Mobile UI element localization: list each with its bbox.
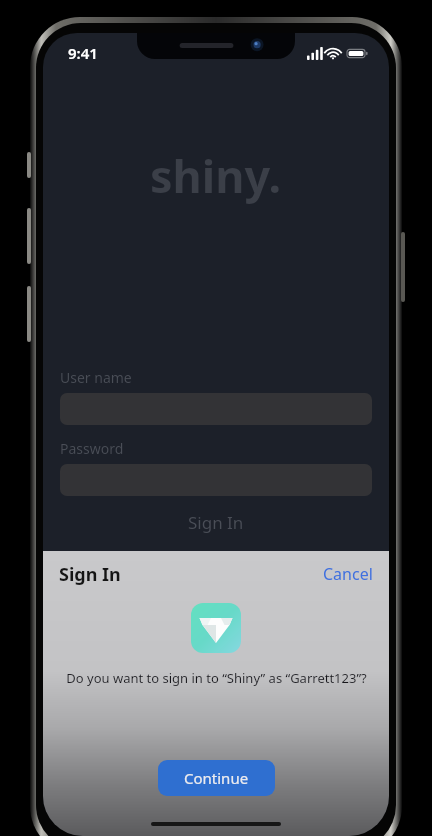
staticText: Sign In <box>59 562 121 587</box>
button[interactable]: Cancel <box>319 559 377 589</box>
staticText: Sign In <box>188 511 244 534</box>
other: Shiny app icon <box>191 603 241 653</box>
button[interactable]: Continue <box>158 760 275 796</box>
button[interactable]: Sign In <box>60 508 372 536</box>
staticText: User name <box>60 368 132 387</box>
staticText: shiny. <box>150 145 282 206</box>
staticText: Password <box>60 439 124 458</box>
staticText: Continue <box>184 768 249 788</box>
staticText: Cancel <box>323 563 373 585</box>
staticText: 9:41 <box>68 43 98 63</box>
staticText: Do you want to sign in to “Shiny” as “Ga… <box>66 669 367 687</box>
